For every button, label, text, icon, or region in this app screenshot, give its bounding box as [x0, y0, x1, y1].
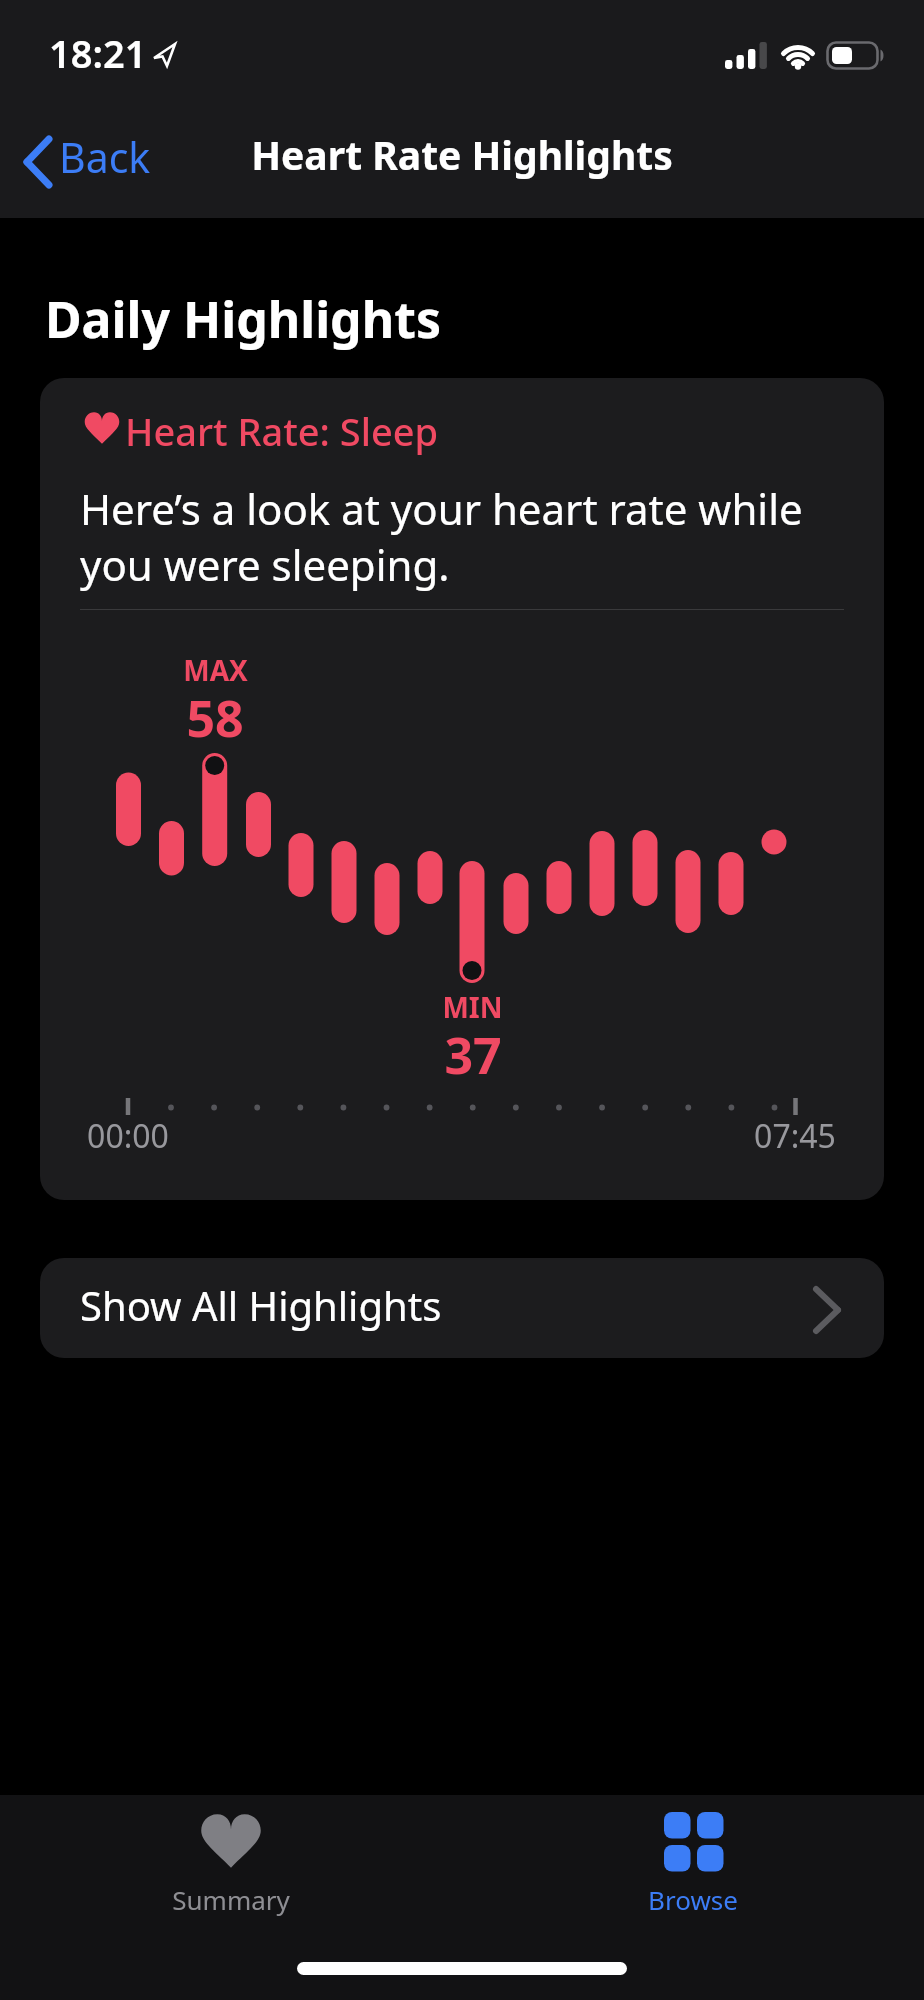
- staticText: Heart Rate: Sleep: [125, 405, 439, 457]
- staticText: Heart Rate Highlights: [251, 128, 673, 181]
- staticText: Here’s a look at your heart rate while y…: [80, 480, 803, 593]
- staticText: Back: [59, 129, 151, 185]
- staticText: 18:21: [49, 27, 147, 79]
- staticText: 58: [186, 684, 244, 752]
- staticText: Browse: [648, 1882, 738, 1917]
- staticText: 37: [444, 1021, 502, 1089]
- staticText: MAX: [183, 651, 248, 689]
- staticText: Summary: [172, 1882, 290, 1917]
- button[interactable]: Show All Highlights: [40, 1258, 884, 1358]
- button[interactable]: Browse: [593, 1795, 793, 1935]
- staticText: Daily Highlights: [45, 285, 441, 353]
- staticText: Show All Highlights: [80, 1278, 442, 1332]
- staticText: MIN: [442, 988, 503, 1026]
- button[interactable]: Back: [14, 124, 174, 198]
- staticText: 07:45: [754, 1114, 836, 1158]
- button[interactable]: Summary: [131, 1795, 331, 1935]
- staticText: 00:00: [87, 1114, 169, 1158]
